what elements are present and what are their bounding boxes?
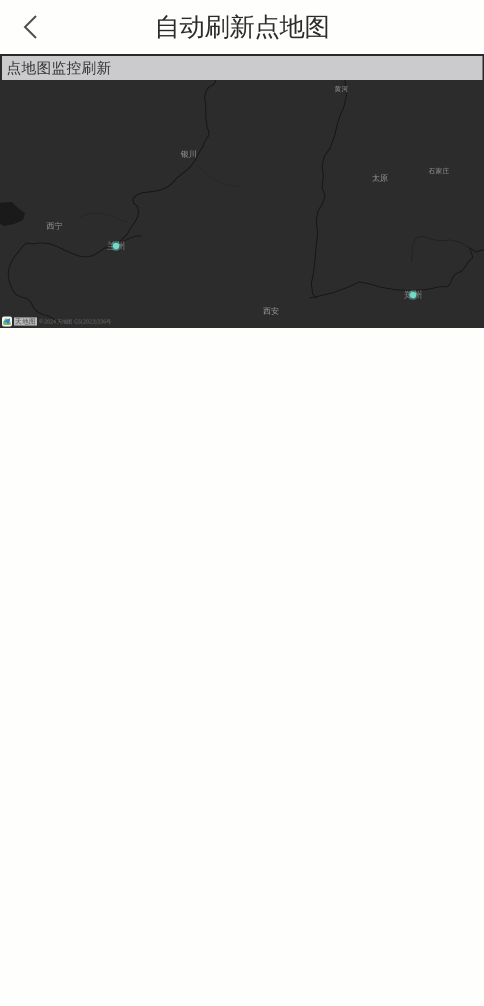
staticText: 郑州 — [404, 289, 422, 301]
staticText: 点地图监控刷新 — [6, 59, 111, 77]
staticText: 兰州 — [107, 240, 125, 252]
button[interactable]: Back — [7, 5, 55, 49]
staticText: 西安 — [263, 306, 279, 316]
staticText: 自动刷新点地图 — [154, 11, 329, 42]
staticText: 太原 — [372, 173, 388, 183]
staticText: 黄河 — [334, 85, 348, 93]
staticText: © 2024 天地图 GS(2023)336号 — [39, 318, 111, 325]
staticText: 西宁 — [47, 221, 63, 231]
staticText: 银川 — [181, 149, 197, 159]
staticText: 天地图 — [15, 317, 36, 326]
staticText: 石家庄 — [428, 167, 449, 175]
